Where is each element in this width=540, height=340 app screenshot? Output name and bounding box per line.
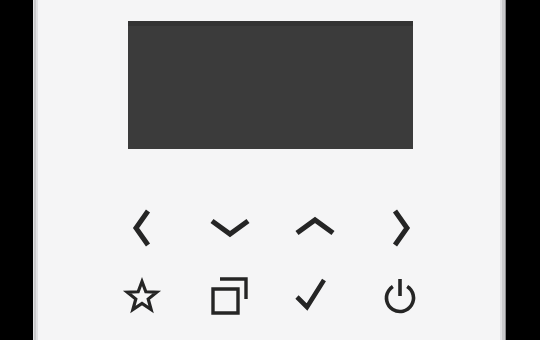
button[interactable]: Favourite: [115, 269, 169, 323]
button[interactable]: Power: [373, 269, 427, 323]
button[interactable]: Windows: [202, 268, 256, 322]
button[interactable]: Previous: [115, 201, 169, 255]
button[interactable]: Up: [288, 200, 342, 254]
button[interactable]: Confirm: [288, 268, 342, 322]
button[interactable]: Down: [203, 200, 257, 254]
button[interactable]: Next: [374, 201, 428, 255]
